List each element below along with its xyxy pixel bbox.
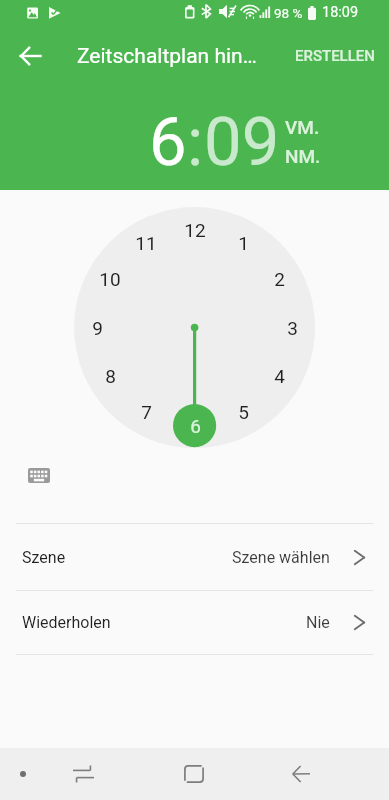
button[interactable]: Letzte Apps [59, 748, 107, 800]
button[interactable]: Zurück [10, 36, 50, 76]
button[interactable]: 11 [129, 228, 163, 258]
staticText: 98 % [274, 5, 303, 21]
staticText: Zeitschaltplan hin… [77, 44, 257, 69]
staticText: 12 [184, 219, 206, 241]
staticText: 4 [274, 365, 285, 387]
staticText: 11 [135, 232, 157, 254]
button[interactable]: NM. [282, 142, 324, 170]
button[interactable]: 10 [93, 264, 127, 294]
button[interactable]: 1 [226, 228, 260, 258]
button[interactable]: 3 [275, 313, 309, 343]
button[interactable]: 5 [226, 397, 260, 427]
button[interactable]: Wiederholen [0, 591, 389, 654]
button[interactable]: 4 [262, 361, 296, 391]
button[interactable]: Startbildschirm [170, 748, 218, 800]
staticText: 7 [141, 401, 152, 423]
button[interactable]: Menü [3, 748, 43, 800]
button[interactable]: 7 [129, 397, 163, 427]
staticText: 2 [274, 268, 285, 290]
staticText: VM. [285, 116, 320, 138]
staticText: ERSTELLEN [295, 47, 375, 65]
button[interactable]: 6 [149, 103, 187, 182]
staticText: Wiederholen [22, 613, 111, 632]
button[interactable]: 9 [80, 313, 114, 343]
button[interactable]: Zurück [277, 748, 325, 800]
staticText: 10 [99, 268, 121, 290]
staticText: : [187, 103, 204, 182]
staticText: 18:09 [322, 4, 359, 21]
staticText: 5 [238, 401, 249, 423]
staticText: 1 [238, 232, 249, 254]
button[interactable]: ERSTELLEN [286, 40, 384, 72]
staticText: 8 [105, 365, 116, 387]
button[interactable]: 2 [262, 264, 296, 294]
button[interactable]: Tastatureingabe [13, 460, 65, 491]
staticText: Szene [22, 548, 66, 567]
button[interactable]: VM. [282, 113, 323, 141]
staticText: Nie [306, 613, 330, 632]
button[interactable]: 12 [178, 215, 212, 245]
button[interactable]: 8 [93, 361, 127, 391]
button[interactable]: Szene [0, 524, 389, 590]
staticText: 3 [287, 317, 298, 339]
button[interactable]: 6 [178, 411, 212, 441]
staticText: Szene wählen [232, 548, 330, 567]
staticText: 9 [92, 317, 103, 339]
staticText: 6 [190, 415, 201, 437]
button[interactable]: 09 [204, 103, 280, 182]
staticText: NM. [285, 145, 321, 167]
